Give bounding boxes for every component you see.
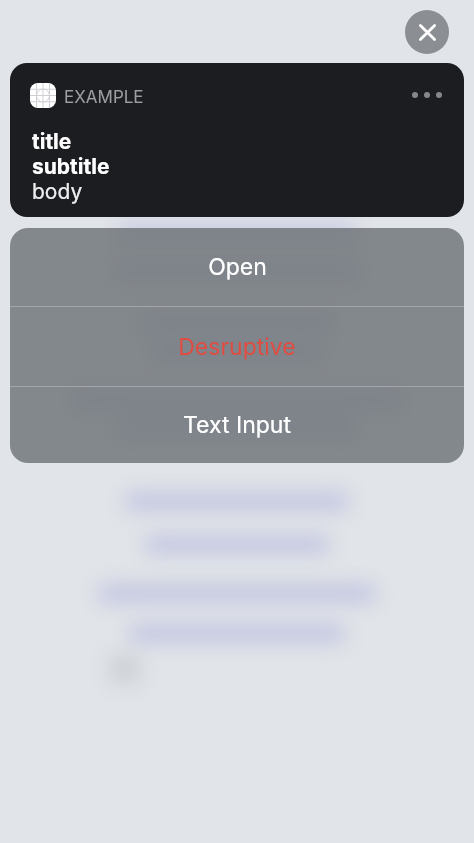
staticText: body xyxy=(32,179,83,204)
staticText: EXAMPLE xyxy=(64,87,144,108)
button[interactable]: More options xyxy=(408,88,446,102)
staticText: subtitle xyxy=(32,154,110,179)
button[interactable]: Close xyxy=(405,10,449,54)
button[interactable]: EXAMPLE xyxy=(10,63,464,217)
staticText: Desruptive xyxy=(178,333,296,361)
staticText: Open xyxy=(208,253,267,281)
button[interactable]: Open xyxy=(10,228,464,306)
button[interactable]: Desruptive xyxy=(10,307,464,386)
button[interactable]: Text Input xyxy=(10,387,464,463)
staticText: Text Input xyxy=(183,411,291,439)
staticText: title xyxy=(32,129,72,154)
